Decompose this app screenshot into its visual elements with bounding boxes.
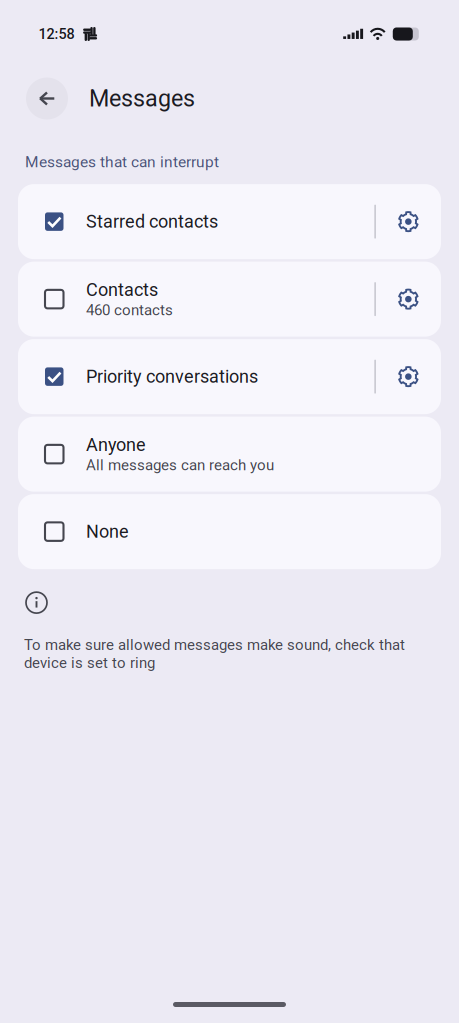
button[interactable]: Anyone [18, 417, 441, 492]
staticText: To make sure allowed messages make sound… [24, 636, 405, 654]
staticText: Priority conversations [86, 366, 258, 387]
button[interactable]: Settings for Starred contacts [376, 184, 441, 259]
staticText: device is set to ring [24, 654, 155, 672]
staticText: All messages can reach you [86, 456, 274, 474]
staticText: 460 contacts [86, 301, 173, 319]
button[interactable]: Contacts [18, 262, 374, 337]
button[interactable]: Settings for Priority conversations [376, 339, 441, 414]
staticText: 12:58 [39, 26, 75, 42]
staticText: None [86, 521, 129, 542]
staticText: Anyone [86, 434, 146, 455]
staticText: Contacts [86, 279, 158, 300]
button[interactable]: Starred contacts [18, 184, 374, 259]
staticText: Starred contacts [86, 211, 218, 232]
staticText: Messages that can interrupt [25, 153, 219, 171]
button[interactable]: Back [26, 77, 68, 119]
button[interactable]: None [18, 494, 441, 569]
staticText: Messages [89, 85, 195, 112]
button[interactable]: Priority conversations [18, 339, 374, 414]
button[interactable]: Settings for Contacts [376, 262, 441, 337]
